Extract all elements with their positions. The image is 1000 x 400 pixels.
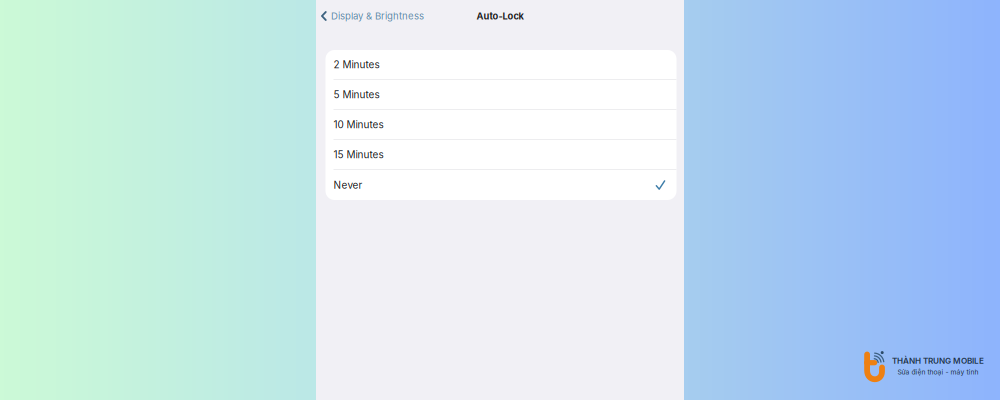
staticText: Never	[333, 179, 362, 191]
staticText: THÀNH TRUNG MOBILE	[892, 356, 984, 366]
button[interactable]: Display & Brightness	[316, 4, 432, 28]
button[interactable]: Never	[325, 170, 676, 200]
staticText: Sửa điện thoại - máy tính	[897, 368, 978, 376]
button[interactable]: 10 Minutes	[325, 110, 676, 140]
staticText: 10 Minutes	[333, 118, 383, 131]
staticText: 5 Minutes	[333, 88, 379, 101]
staticText: 2 Minutes	[333, 58, 379, 71]
staticText: 15 Minutes	[333, 148, 383, 161]
staticText: Auto-Lock	[476, 10, 523, 22]
button[interactable]: 2 Minutes	[325, 50, 676, 80]
button[interactable]: 15 Minutes	[325, 140, 676, 170]
staticText: Display & Brightness	[331, 10, 424, 22]
button[interactable]: 5 Minutes	[325, 80, 676, 110]
